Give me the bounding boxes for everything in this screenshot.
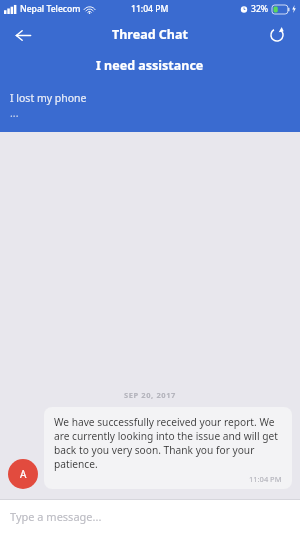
staticText: I lost my phone xyxy=(10,91,87,105)
staticText: Thread Chat xyxy=(112,26,188,43)
staticText: We have successfully received your repor… xyxy=(54,415,282,471)
staticText: Nepal Telecom xyxy=(20,3,81,15)
staticText: 11:04 PM xyxy=(131,3,169,15)
button[interactable]: Type a message... xyxy=(0,500,300,533)
staticText: A xyxy=(20,467,27,481)
staticText: I need assistance xyxy=(96,57,204,74)
staticText: ... xyxy=(10,106,19,120)
button[interactable]: Back xyxy=(8,20,38,50)
staticText: Type a message... xyxy=(10,509,102,524)
button[interactable]: Refresh xyxy=(262,20,292,50)
staticText: SEP 20, 2017 xyxy=(124,390,176,400)
staticText: 32% xyxy=(251,3,269,15)
button[interactable]: A xyxy=(8,407,292,489)
staticText: 11:04 PM xyxy=(249,474,282,484)
